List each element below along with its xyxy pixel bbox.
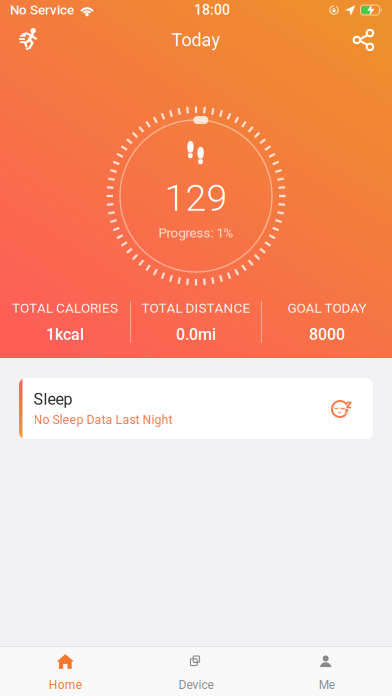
button[interactable]: Me [261,647,392,696]
button[interactable]: Sleep [0,358,392,439]
staticText: Today [171,29,220,51]
staticText: TOTAL CALORIES [12,300,118,316]
staticText: Sleep [33,390,72,409]
staticText: Device [178,678,213,692]
staticText: 129 [164,176,227,220]
staticText: Progress: 1% [158,225,233,241]
button[interactable]: Home [0,647,131,696]
button[interactable]: Workouts [4,19,53,60]
staticText: 1kcal [46,325,84,344]
staticText: 8000 [309,325,345,344]
staticText: No Service [10,2,74,18]
staticText: Me [319,678,335,692]
staticText: GOAL TODAY [287,300,366,316]
button[interactable]: Device [131,647,261,696]
staticText: Home [49,678,82,692]
staticText: TOTAL DISTANCE [141,300,250,316]
staticText: No Sleep Data Last Night [33,413,172,427]
staticText: 0.0mi [176,325,216,344]
staticText: 18:00 [194,2,230,18]
button[interactable]: Share [339,19,388,60]
